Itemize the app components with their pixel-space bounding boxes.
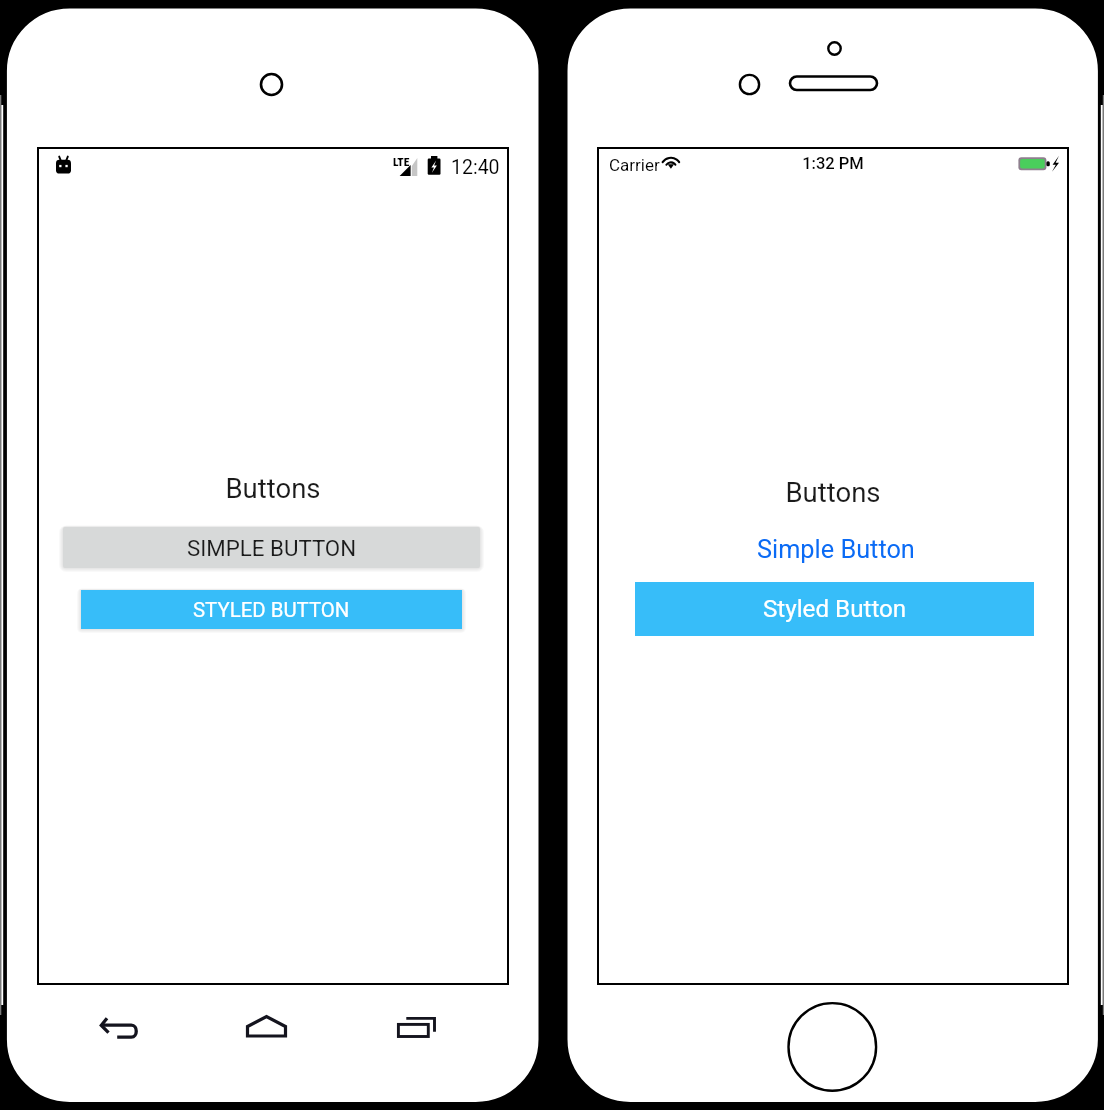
staticText: Buttons	[38, 472, 508, 504]
button[interactable]: SIMPLE BUTTON	[63, 527, 480, 568]
staticText: Styled Button	[763, 595, 907, 623]
staticText: SIMPLE BUTTON	[187, 535, 357, 561]
staticText: Carrier	[609, 155, 660, 175]
staticText: STYLED BUTTON	[193, 598, 350, 622]
button[interactable]: Back	[84, 1008, 156, 1052]
staticText: 12:40	[451, 156, 500, 179]
staticText: LTE	[393, 155, 410, 168]
button[interactable]: Home	[231, 1007, 303, 1051]
staticText: 1:32 PM	[598, 154, 1068, 173]
button[interactable]: STYLED BUTTON	[81, 590, 462, 629]
staticText: Simple Button	[757, 535, 915, 565]
button[interactable]: Recent apps	[381, 1007, 453, 1051]
button[interactable]: Simple Button	[601, 533, 1071, 567]
button[interactable]: Styled Button	[635, 582, 1034, 636]
staticText: Buttons	[598, 476, 1068, 508]
